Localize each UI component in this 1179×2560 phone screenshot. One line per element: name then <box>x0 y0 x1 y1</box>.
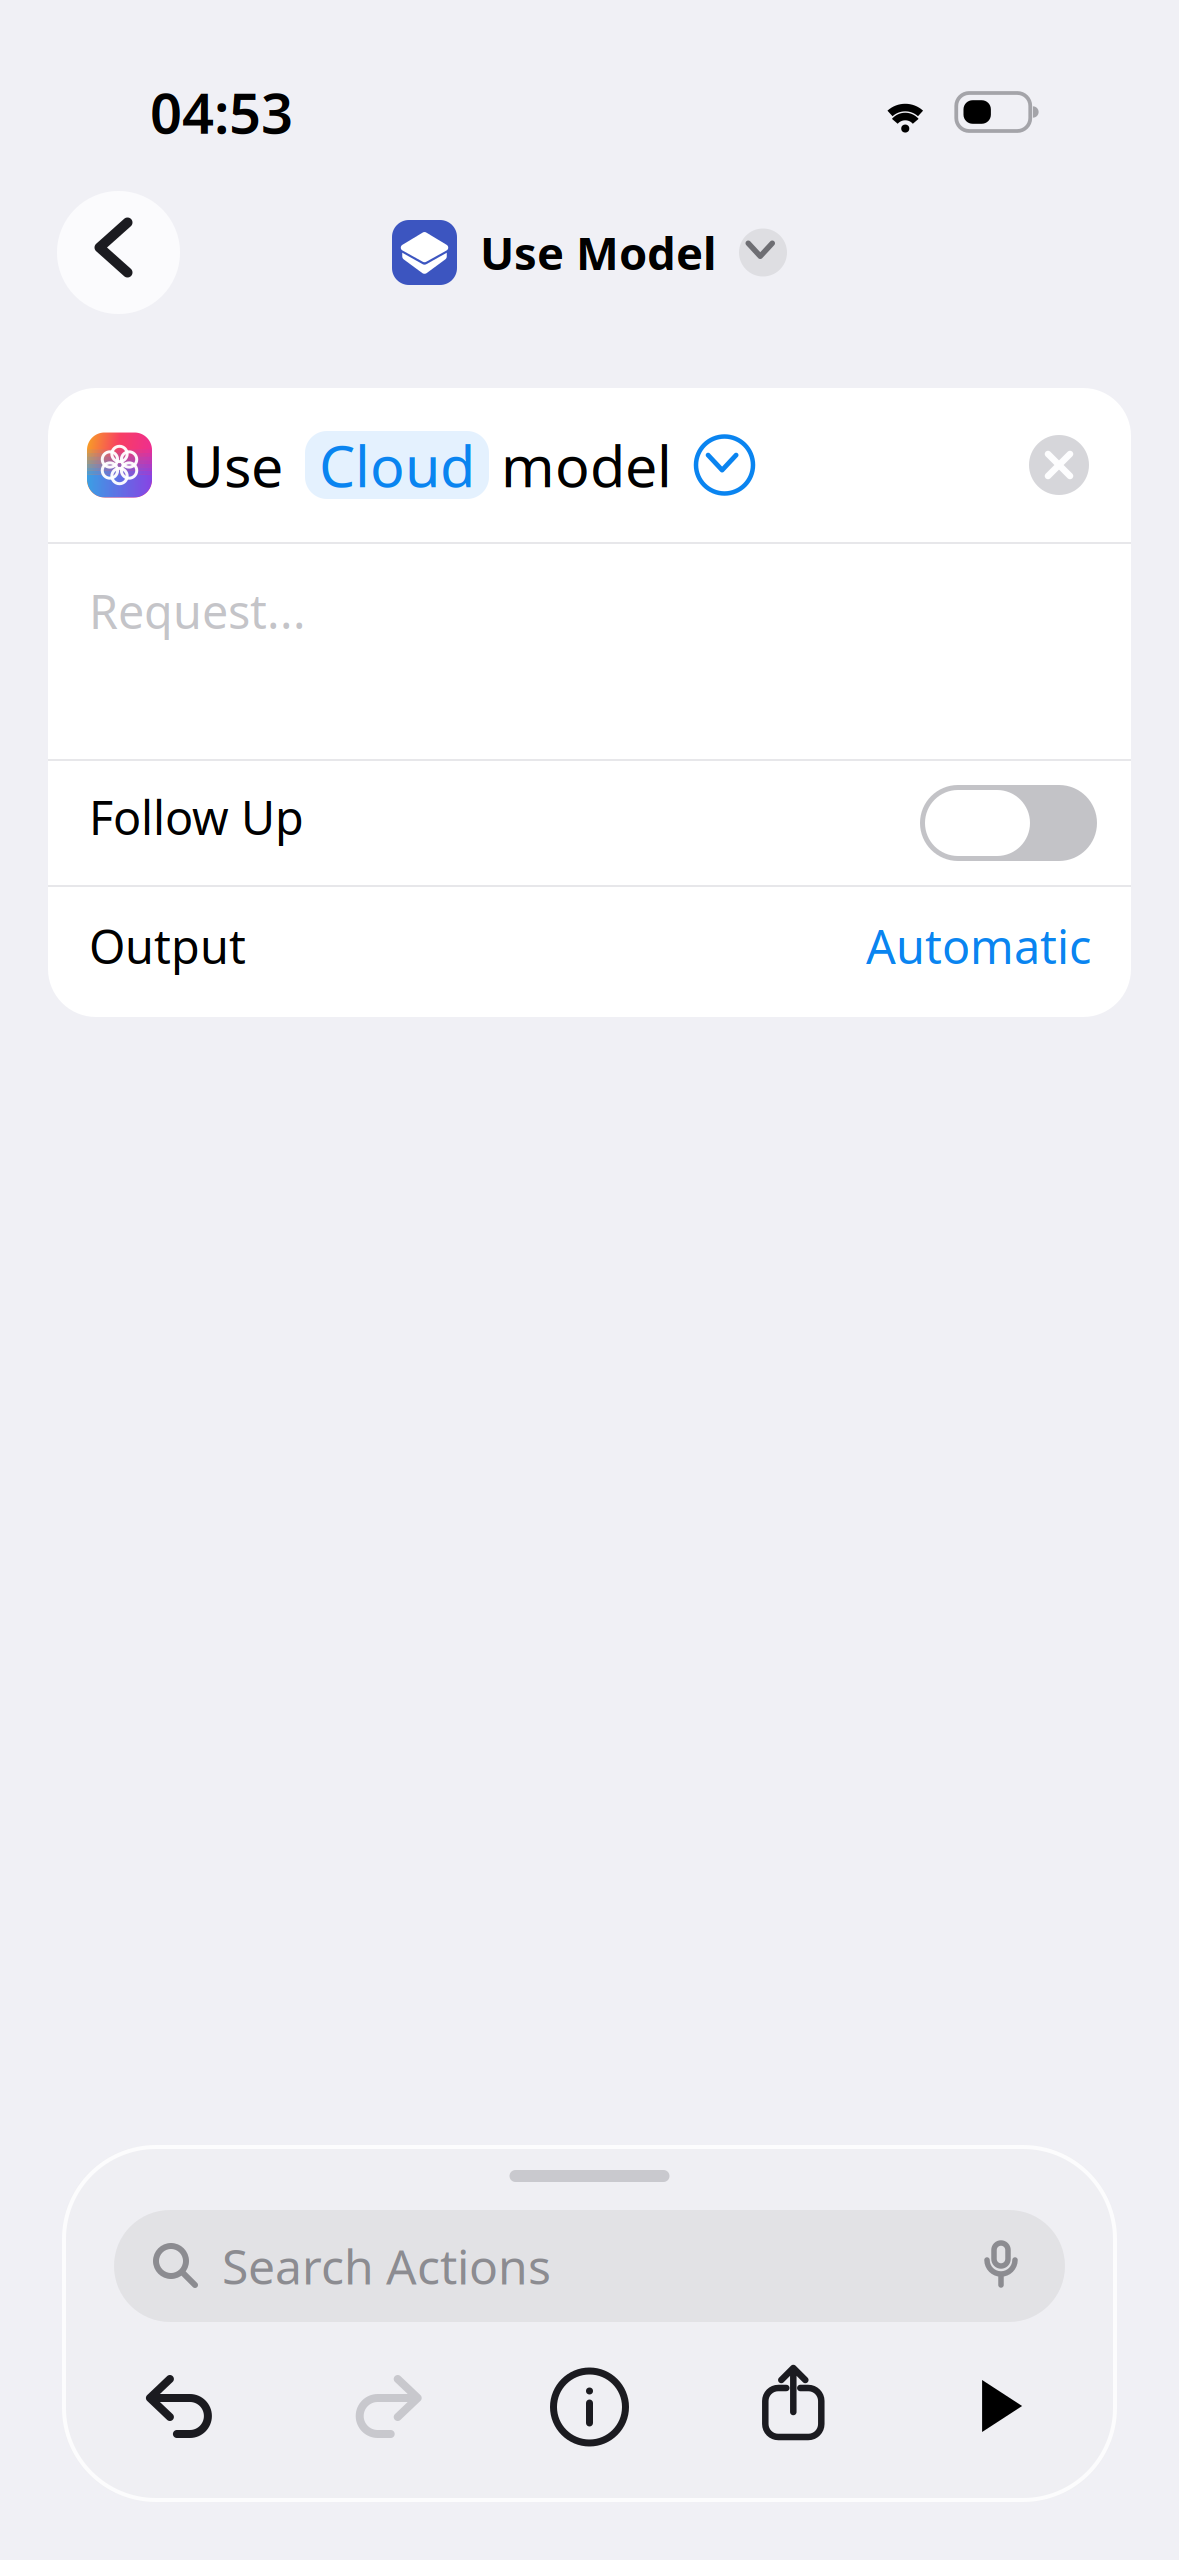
staticText: model <box>501 427 672 503</box>
button[interactable]: Run <box>956 2366 1038 2448</box>
staticText: Output <box>89 915 246 977</box>
button[interactable]: Request... <box>48 544 1131 759</box>
button[interactable]: Details <box>548 2366 630 2448</box>
staticText: Search Actions <box>222 2234 551 2298</box>
button[interactable]: Back <box>57 191 180 314</box>
button[interactable]: Share <box>752 2364 834 2450</box>
staticText: Cloud <box>319 427 475 503</box>
staticText: Use <box>182 427 283 503</box>
staticText: Follow Up <box>89 786 304 848</box>
staticText: Use Model <box>480 222 717 283</box>
button[interactable]: Use Model <box>392 220 787 285</box>
button[interactable]: Undo <box>141 2366 223 2448</box>
button[interactable]: Output <box>48 887 1131 1017</box>
staticText: Automatic <box>866 915 1091 977</box>
staticText: Request... <box>89 580 306 642</box>
button[interactable]: Choose model <box>696 436 753 493</box>
button[interactable]: Search Actions <box>114 2210 1065 2322</box>
button[interactable]: Remove action <box>1029 435 1089 495</box>
button[interactable]: Follow Up <box>48 761 1131 885</box>
staticText: 04:53 <box>150 75 293 149</box>
button[interactable]: Redo <box>345 2366 427 2448</box>
